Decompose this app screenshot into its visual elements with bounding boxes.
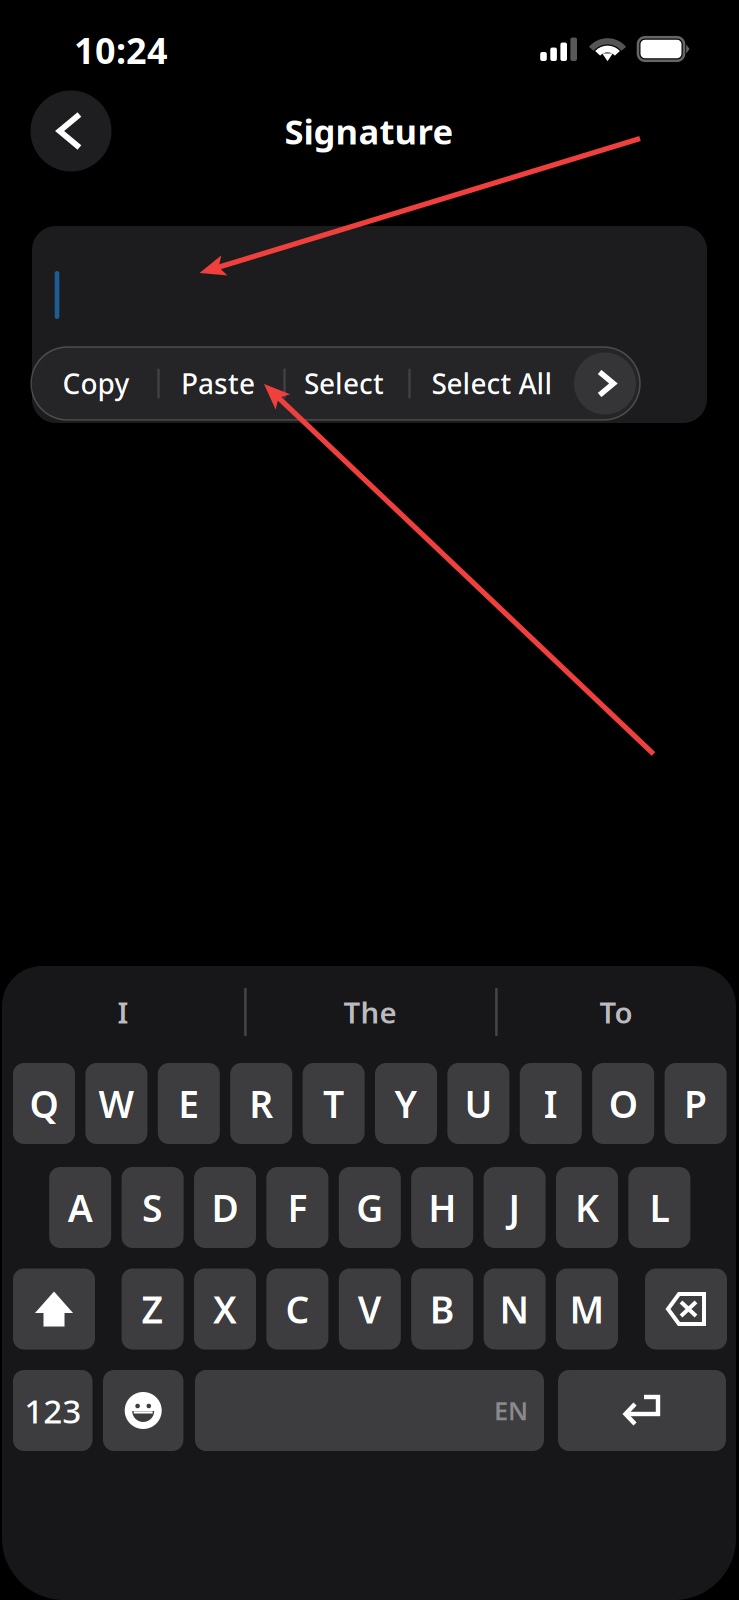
button[interactable]: O <box>592 1063 654 1144</box>
button[interactable]: M <box>556 1268 618 1349</box>
staticText: F <box>287 1183 307 1232</box>
staticText: To <box>599 992 632 1031</box>
button[interactable]: Paste <box>163 347 273 420</box>
button[interactable]: X <box>194 1268 256 1349</box>
button[interactable]: Delete <box>645 1268 727 1349</box>
button[interactable]: R <box>230 1063 292 1144</box>
button[interactable]: N <box>484 1268 546 1349</box>
staticText: R <box>249 1079 273 1128</box>
button[interactable]: V <box>339 1268 401 1349</box>
button[interactable]: Select All <box>417 347 567 420</box>
button[interactable]: W <box>85 1063 147 1144</box>
staticText: Copy <box>62 365 129 402</box>
button[interactable]: C <box>266 1268 328 1349</box>
button[interactable]: Space <box>195 1370 544 1451</box>
staticText: The <box>343 992 396 1031</box>
staticText: G <box>356 1183 383 1232</box>
button[interactable]: A <box>49 1167 111 1248</box>
staticText: X <box>213 1284 237 1334</box>
button[interactable]: Emoji <box>103 1370 183 1451</box>
button[interactable]: To <box>541 980 691 1044</box>
staticText: Select <box>304 365 384 402</box>
staticText: D <box>211 1183 238 1232</box>
button[interactable]: L <box>628 1167 690 1248</box>
button[interactable]: Select <box>287 347 401 420</box>
button[interactable]: Y <box>375 1063 437 1144</box>
staticText: U <box>464 1079 492 1128</box>
staticText: Paste <box>181 365 255 402</box>
staticText: Y <box>394 1079 417 1128</box>
button[interactable]: S <box>122 1167 184 1248</box>
button[interactable]: The <box>280 980 460 1044</box>
staticText: Q <box>29 1079 58 1128</box>
staticText: M <box>569 1284 604 1334</box>
button[interactable]: Copy <box>36 347 156 420</box>
button[interactable]: D <box>194 1167 256 1248</box>
staticText: K <box>575 1183 599 1232</box>
button[interactable]: Q <box>13 1063 75 1144</box>
staticText: A <box>68 1183 93 1232</box>
button[interactable]: P <box>665 1063 727 1144</box>
staticText: P <box>684 1079 707 1128</box>
button[interactable]: More actions <box>572 350 638 416</box>
staticText: O <box>609 1079 638 1128</box>
button[interactable]: B <box>411 1268 473 1349</box>
staticText: C <box>285 1284 309 1334</box>
staticText: Z <box>142 1284 164 1334</box>
staticText: N <box>500 1284 530 1334</box>
staticText: EN <box>494 1394 528 1427</box>
staticText: I <box>544 1079 558 1128</box>
button[interactable]: J <box>484 1167 546 1248</box>
button[interactable]: T <box>303 1063 365 1144</box>
button[interactable]: G <box>339 1167 401 1248</box>
button[interactable]: Return <box>558 1370 726 1451</box>
button[interactable]: K <box>556 1167 618 1248</box>
button[interactable]: I <box>48 980 198 1044</box>
staticText: T <box>323 1079 344 1128</box>
staticText: I <box>117 992 128 1031</box>
button[interactable]: I <box>520 1063 582 1144</box>
staticText: W <box>98 1079 134 1128</box>
button[interactable]: Numbers <box>13 1370 92 1451</box>
staticText: Signature <box>284 108 453 154</box>
staticText: E <box>178 1079 199 1128</box>
button[interactable]: E <box>158 1063 220 1144</box>
staticText: S <box>142 1183 163 1232</box>
button[interactable]: Z <box>122 1268 184 1349</box>
staticText: V <box>358 1284 382 1334</box>
staticText: L <box>649 1183 669 1232</box>
button[interactable]: H <box>411 1167 473 1248</box>
staticText: 10:24 <box>74 26 168 74</box>
staticText: B <box>430 1284 455 1334</box>
staticText: J <box>509 1183 521 1232</box>
staticText: 123 <box>24 1388 81 1433</box>
button[interactable]: U <box>447 1063 509 1144</box>
button[interactable]: Shift <box>13 1268 95 1349</box>
staticText: H <box>428 1183 456 1232</box>
button[interactable]: Back <box>30 90 111 171</box>
staticText: Select All <box>431 365 552 402</box>
button[interactable]: F <box>266 1167 328 1248</box>
